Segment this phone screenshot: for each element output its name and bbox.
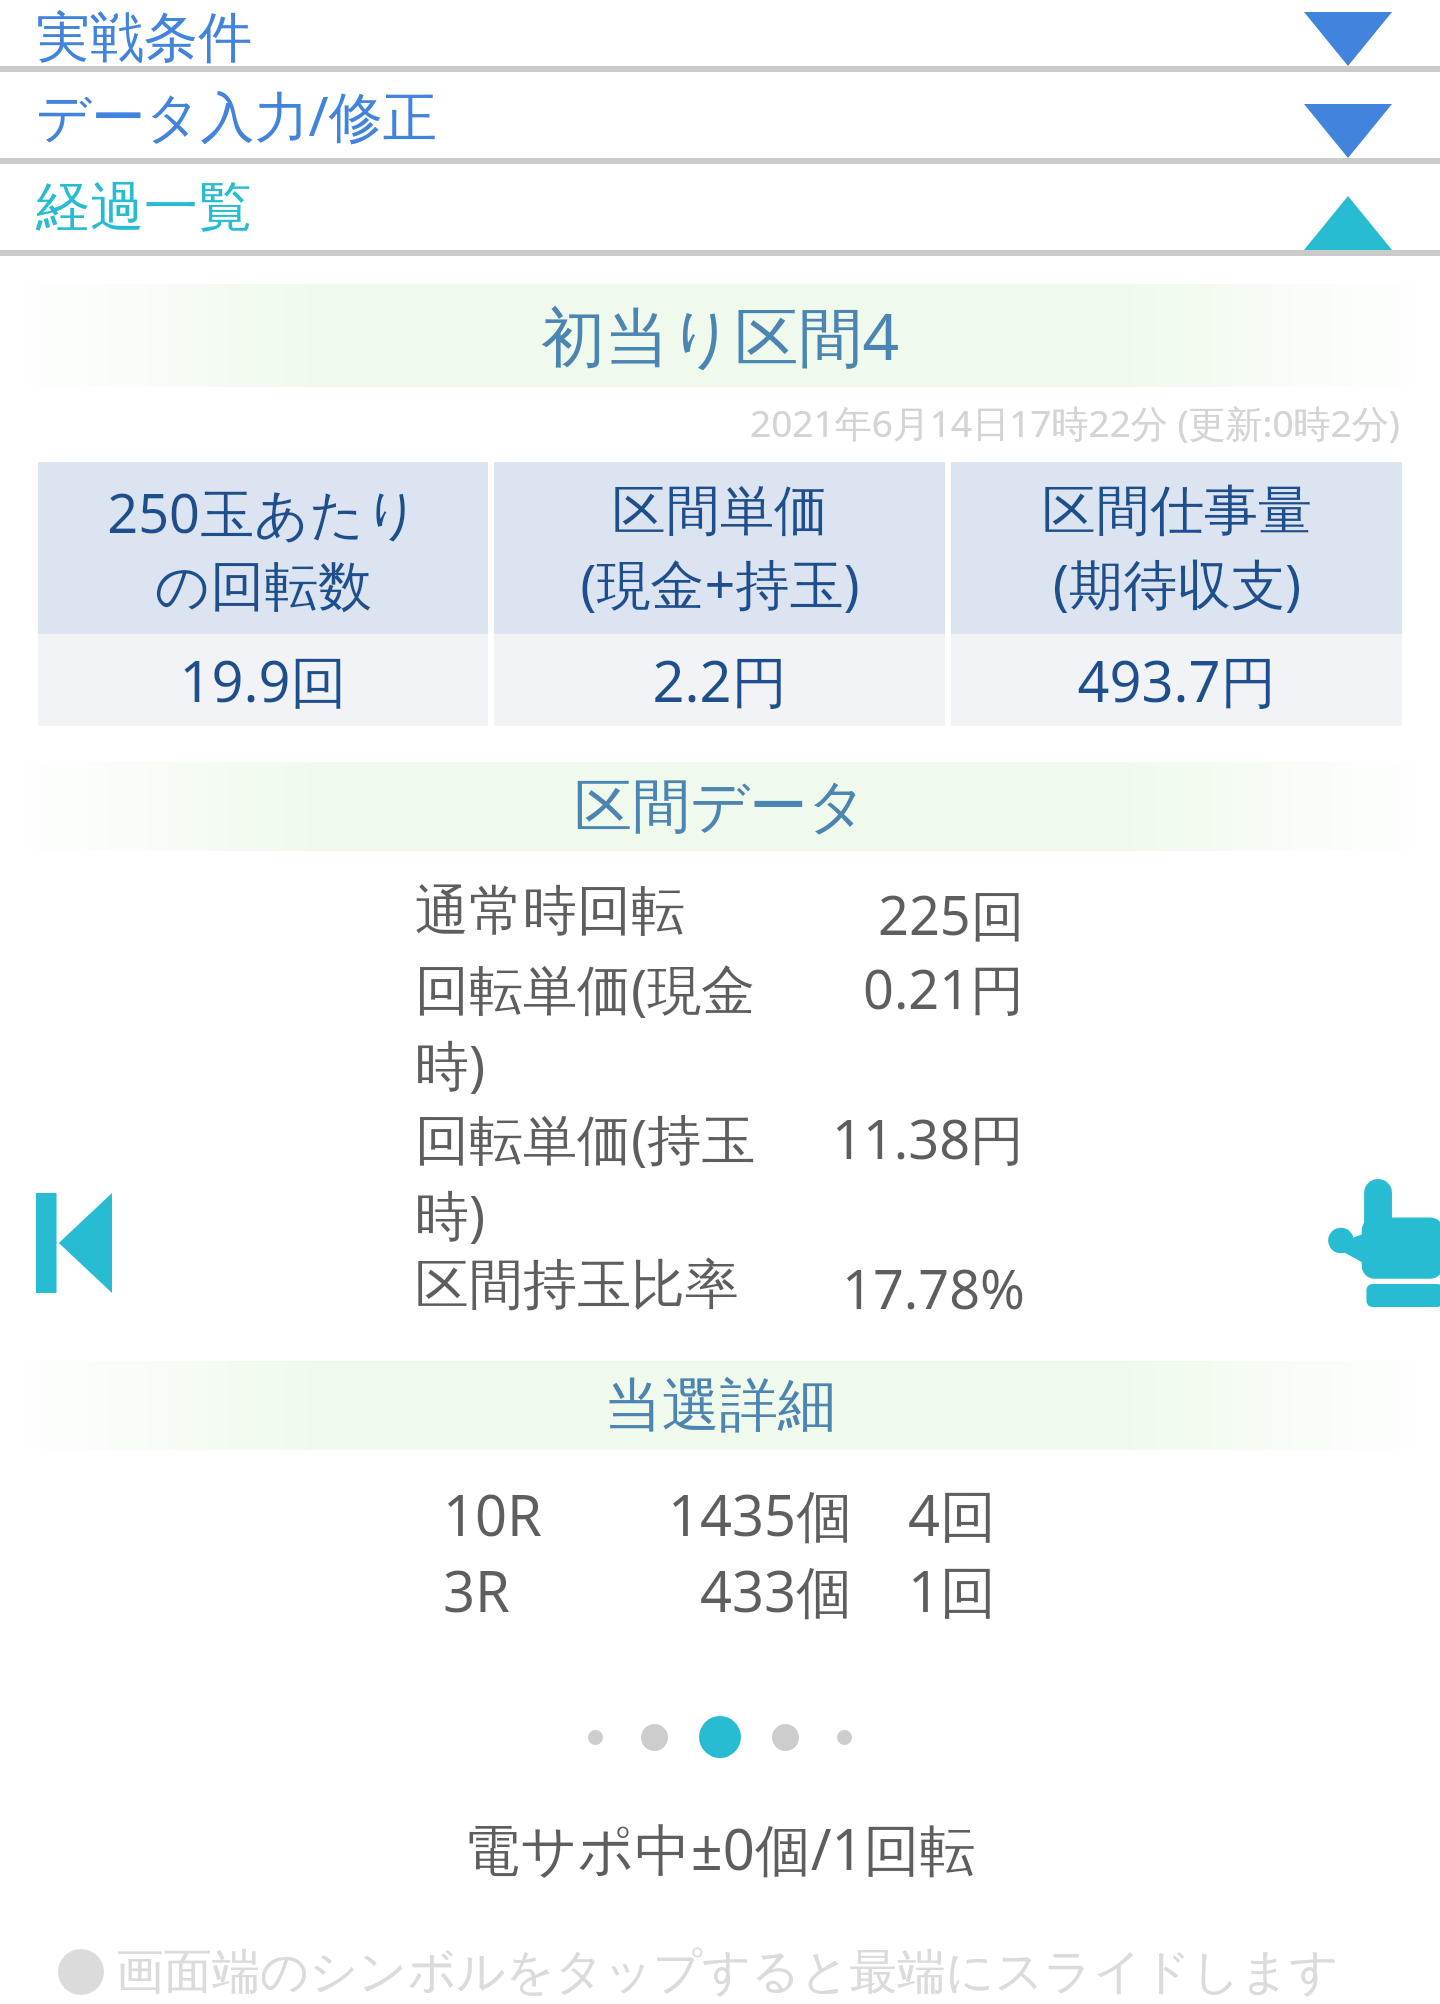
button[interactable]: 実戦条件 [0,4,1440,72]
staticText: 2021年6月14日17時22分 (更新:0時2分) [750,397,1400,448]
button[interactable]: 最初へスライド [14,1168,134,1318]
staticText: 区間持玉比率 [415,1251,739,1319]
staticText: 区間データ [574,770,867,843]
staticText: 10R [443,1476,542,1552]
staticText: 回転単価(持玉時) [415,1101,815,1251]
staticText: 経過一覧 [36,173,252,241]
staticText: 初当り区間4 [541,292,900,379]
staticText: 画面端のシンボルをタップすると最端にスライドします [116,1942,1339,2002]
staticText: 実戦条件 [36,4,252,66]
staticText: 1435個 [668,1476,853,1552]
staticText: 区間単価 (現金+持玉) [580,477,860,620]
staticText: 225回 [878,877,1025,951]
staticText: 3R [443,1552,510,1628]
staticText: 17.78% [842,1251,1025,1325]
staticText: 493.7円 [1077,642,1277,718]
button[interactable]: 最後へスライド [1320,1160,1440,1325]
staticText: 区間仕事量 (期待収支) [1042,477,1312,620]
staticText: 0.21円 [863,951,1025,1025]
staticText: 433個 [700,1552,853,1628]
staticText: 通常時回転 [415,877,685,945]
staticText: 当選詳細 [604,1369,836,1442]
staticText: 1回 [908,1552,997,1628]
staticText: 11.38円 [832,1101,1025,1175]
staticText: 回転単価(現金時) [415,951,815,1101]
staticText: データ入力/修正 [36,78,437,152]
staticText: 250玉あたり の回転数 [107,475,420,621]
staticText: 2.2円 [652,642,788,718]
staticText: 4回 [908,1476,997,1552]
staticText: 電サポ中±0個/1回転 [464,1810,976,1886]
button[interactable]: 経過一覧 [0,164,1440,256]
button[interactable]: データ入力/修正 [0,72,1440,164]
staticText: 19.9回 [179,642,347,718]
